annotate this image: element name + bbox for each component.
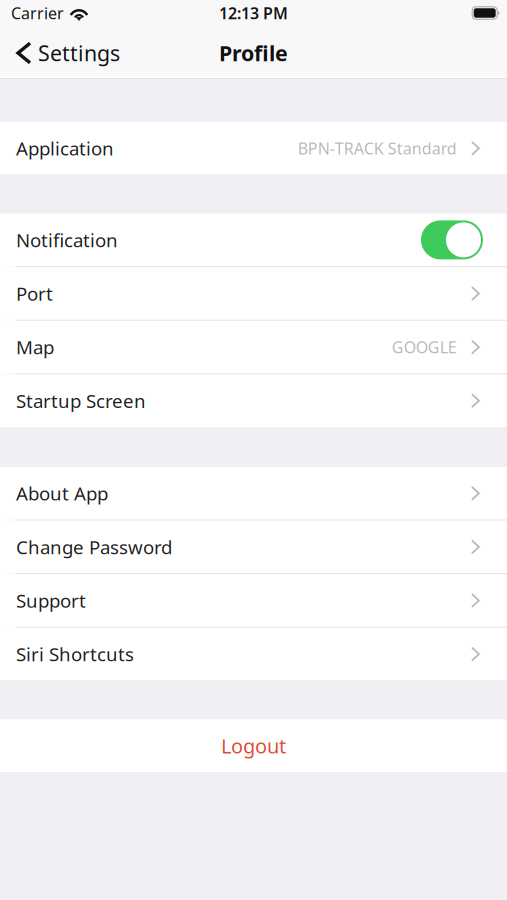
staticText: About App: [16, 481, 108, 506]
staticText: Application: [16, 136, 114, 161]
button[interactable]: Notification: [0, 214, 507, 266]
staticText: Logout: [221, 732, 286, 759]
staticText: Settings: [38, 39, 120, 67]
staticText: Startup Screen: [16, 388, 146, 413]
staticText: Profile: [219, 39, 288, 67]
button[interactable]: About App: [0, 467, 507, 520]
staticText: GOOGLE: [392, 336, 457, 358]
staticText: 12:13 PM: [219, 2, 288, 24]
button[interactable]: Siri Shortcuts: [0, 628, 507, 680]
button[interactable]: Change Password: [0, 521, 507, 573]
staticText: Carrier: [11, 2, 64, 24]
staticText: Support: [16, 588, 86, 613]
staticText: Map: [16, 335, 54, 359]
staticText: Port: [16, 281, 53, 306]
staticText: Notification: [16, 227, 118, 252]
button[interactable]: Startup Screen: [0, 374, 507, 427]
button[interactable]: Port: [0, 267, 507, 320]
staticText: Change Password: [16, 534, 172, 559]
button[interactable]: Settings: [0, 28, 130, 78]
staticText: Siri Shortcuts: [16, 642, 134, 666]
button[interactable]: Logout: [0, 719, 507, 772]
button[interactable]: Map: [0, 321, 507, 373]
staticText: BPN-TRACK Standard: [298, 138, 457, 159]
button[interactable]: Application: [0, 122, 507, 175]
button[interactable]: Support: [0, 574, 507, 627]
